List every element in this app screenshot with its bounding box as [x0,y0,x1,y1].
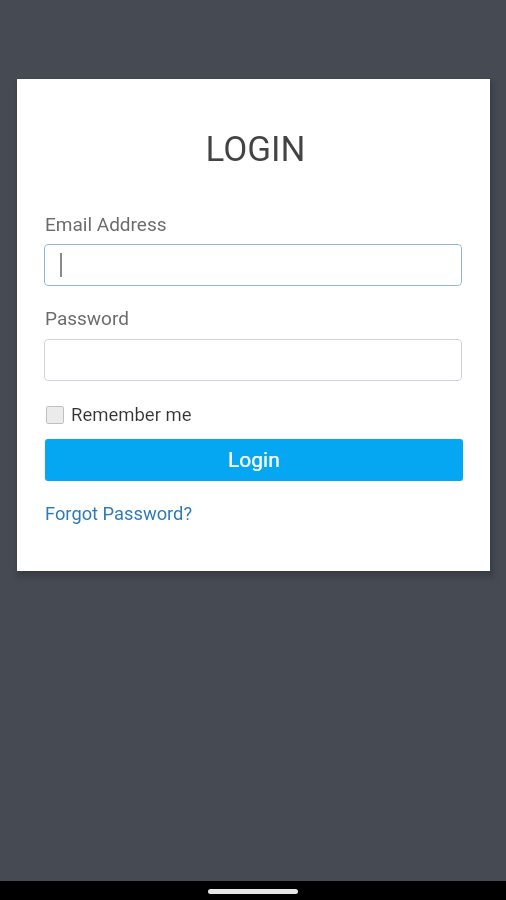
button[interactable]: Email address input field [44,244,462,286]
button[interactable]: Remember me [46,404,192,426]
staticText: Remember me [71,404,192,426]
other: Home gesture handle [208,889,298,894]
staticText: Login [228,448,280,473]
staticText: Email Address [45,213,167,235]
staticText: Password [45,307,129,329]
staticText: LOGIN [19,129,492,170]
button[interactable]: Forgot Password? [45,503,193,524]
button[interactable]: Password input field [44,339,462,381]
button[interactable]: Login [45,439,463,481]
